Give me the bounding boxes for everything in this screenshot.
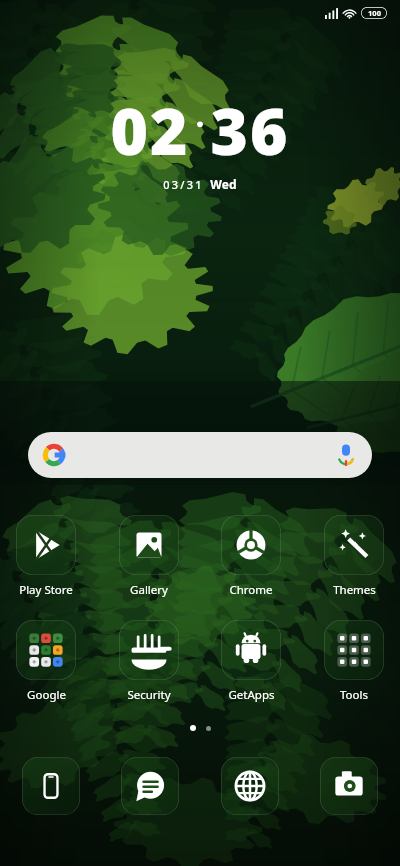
button[interactable]: Messages <box>121 757 179 815</box>
staticText: Google <box>27 687 66 703</box>
button[interactable]: Chrome <box>221 515 281 598</box>
staticText: 100 <box>368 8 381 18</box>
button[interactable]: Google search <box>28 432 372 478</box>
staticText: Security <box>127 687 171 703</box>
button[interactable]: Phone <box>22 757 80 815</box>
button[interactable]: 02 <box>0 87 400 192</box>
button[interactable]: Gallery <box>119 515 179 598</box>
staticText: Tools <box>340 687 368 703</box>
staticText: Gallery <box>130 582 168 598</box>
button[interactable]: GetApps <box>221 620 281 703</box>
button[interactable]: Tools <box>324 620 384 703</box>
staticText: GetApps <box>228 687 275 703</box>
staticText: Chrome <box>229 582 273 598</box>
staticText: Wed <box>210 176 237 192</box>
staticText: 03/31 <box>163 177 204 192</box>
button[interactable]: Browser <box>221 757 279 815</box>
button[interactable]: Google <box>16 620 76 703</box>
staticText: 02 <box>110 87 190 174</box>
button[interactable]: Camera <box>320 757 378 815</box>
button[interactable]: Themes <box>324 515 384 598</box>
other: Voice search <box>336 445 356 465</box>
staticText: 36 <box>210 87 290 174</box>
staticText: Themes <box>333 582 376 598</box>
staticText: Play Store <box>19 582 73 598</box>
button[interactable]: Security <box>119 620 179 703</box>
button[interactable]: Play Store <box>16 515 76 598</box>
